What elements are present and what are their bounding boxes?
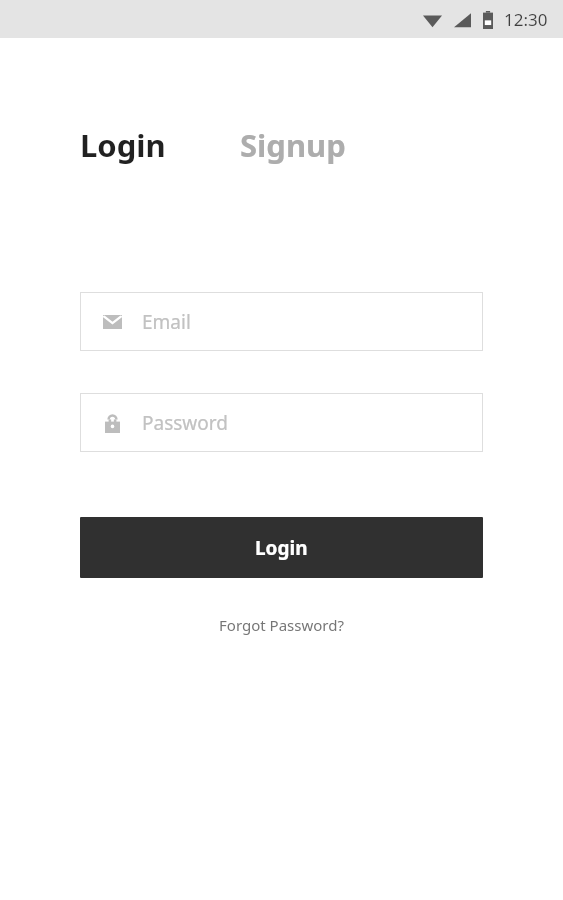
staticText: Login <box>255 535 308 561</box>
button[interactable]: Signup <box>240 124 346 166</box>
staticText: Forgot Password? <box>219 615 344 635</box>
button[interactable]: Email <box>80 292 483 351</box>
staticText: Email <box>142 309 191 335</box>
button[interactable]: Login <box>80 517 483 578</box>
staticText: Login <box>80 124 166 166</box>
staticText: Password <box>142 410 228 436</box>
staticText: Signup <box>240 124 346 166</box>
button[interactable]: Password <box>80 393 483 452</box>
staticText: 12:30 <box>504 8 548 31</box>
button[interactable]: Forgot Password? <box>219 615 344 635</box>
button[interactable]: Login <box>80 124 166 166</box>
